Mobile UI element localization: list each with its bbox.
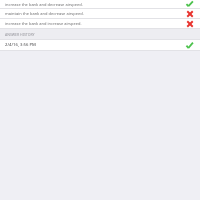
other: Correct xyxy=(185,0,194,8)
staticText: 2/4/16, 3:56 PM xyxy=(5,42,181,48)
staticText: increase the bank and increase airspeed. xyxy=(5,21,182,26)
staticText: maintain the bank and decrease airspeed. xyxy=(5,11,182,16)
staticText: ANSWER HISTORY xyxy=(5,32,35,37)
button[interactable]: 2/4/16, 3:56 PM xyxy=(0,40,200,50)
other: Correct xyxy=(185,41,194,50)
button[interactable]: maintain the bank and decrease airspeed. xyxy=(0,9,200,18)
button[interactable]: increase the bank and decrease airspeed. xyxy=(0,0,200,8)
staticText: increase the bank and decrease airspeed. xyxy=(5,2,181,7)
button[interactable]: increase the bank and increase airspeed. xyxy=(0,19,200,28)
other: Incorrect xyxy=(186,10,194,18)
other: Incorrect xyxy=(186,20,194,28)
